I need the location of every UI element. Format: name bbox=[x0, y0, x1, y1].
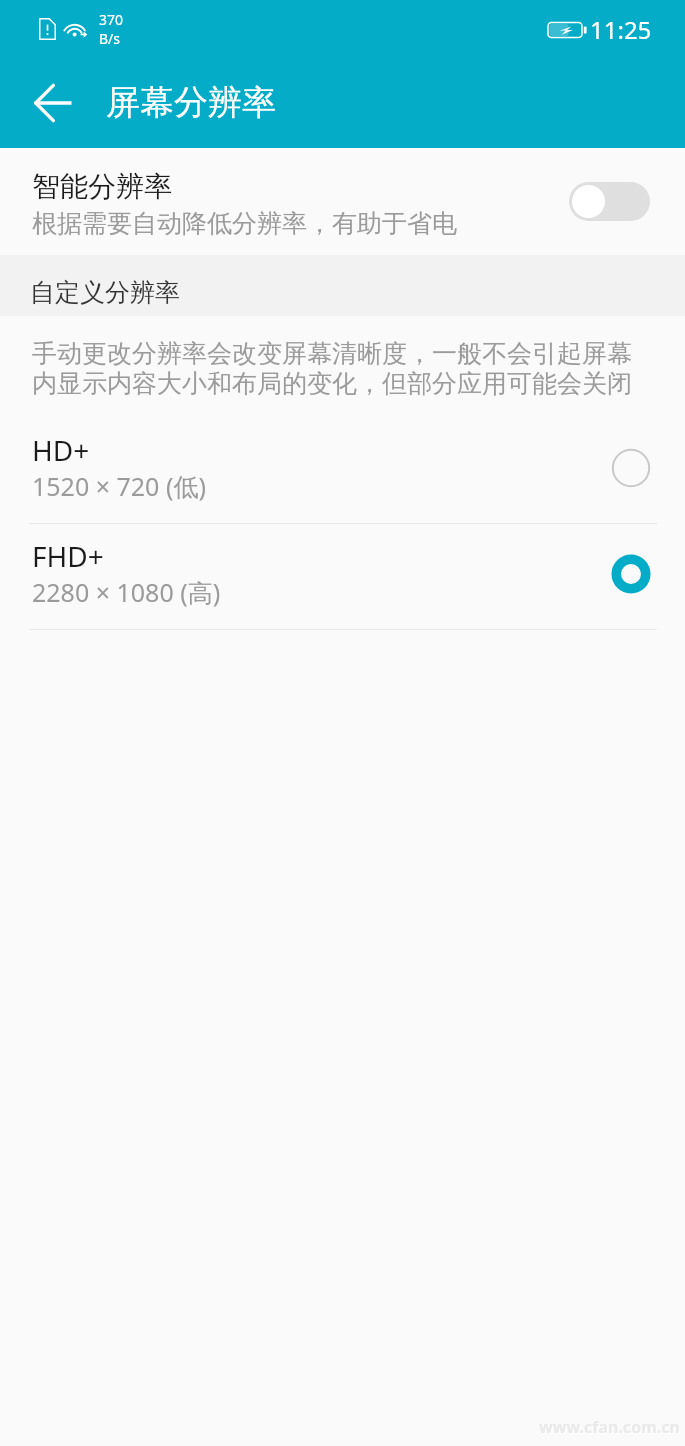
button[interactable]: Select HD+ bbox=[607, 444, 655, 492]
staticText: 1520 × 720 (低) bbox=[32, 469, 206, 503]
staticText: 屏幕分辨率 bbox=[106, 81, 276, 124]
staticText: 370 bbox=[99, 10, 124, 29]
staticText: B/s bbox=[99, 29, 121, 48]
staticText: 智能分辨率 bbox=[32, 169, 172, 204]
button[interactable]: Back bbox=[26, 76, 80, 130]
staticText: 自定义分辨率 bbox=[30, 277, 180, 308]
button[interactable]: HD+ bbox=[0, 418, 685, 523]
button[interactable]: FHD+ selected bbox=[607, 550, 655, 598]
staticText: 11:25 bbox=[590, 13, 652, 46]
staticText: www.cfan.com.cn bbox=[539, 1416, 680, 1438]
staticText: FHD+ bbox=[32, 537, 104, 575]
staticText: 根据需要自动降低分辨率，有助于省电 bbox=[32, 208, 457, 239]
staticText: www.cfan.com.cn bbox=[540, 1417, 681, 1439]
staticText: 手动更改分辨率会改变屏幕清晰度，一般不会引起屏幕内显示内容大小和布局的变化，但部… bbox=[32, 338, 655, 400]
staticText: 2280 × 1080 (高) bbox=[32, 575, 221, 609]
staticText: HD+ bbox=[32, 431, 90, 469]
button[interactable]: FHD+ bbox=[0, 524, 685, 629]
button[interactable]: 智能分辨率 bbox=[0, 148, 685, 255]
button[interactable]: Smart resolution, off bbox=[569, 182, 650, 221]
